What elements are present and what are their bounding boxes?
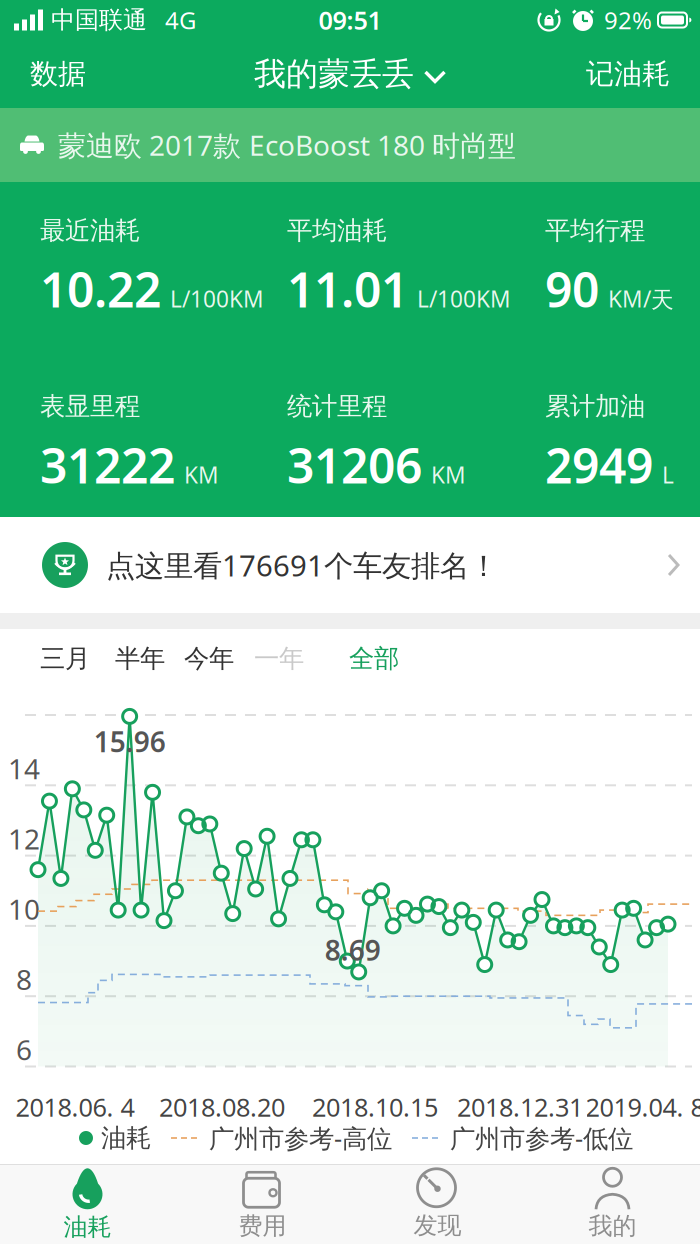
staticText: 4G <box>165 4 196 36</box>
staticText: KM <box>184 460 219 490</box>
staticText: 平均行程 <box>545 215 645 246</box>
button[interactable]: 半年 <box>115 643 165 674</box>
staticText: 15.96 <box>94 723 166 760</box>
button[interactable]: 费用 <box>175 1165 350 1244</box>
button[interactable]: 发现 <box>350 1165 525 1244</box>
staticText: 14 <box>8 750 40 787</box>
staticText: 2019.04. 8 <box>585 1090 700 1124</box>
staticText: 8 <box>16 961 32 998</box>
staticText: 12 <box>8 820 40 857</box>
staticText: 2018.08.20 <box>159 1090 285 1124</box>
staticText: 费用 <box>238 1211 286 1241</box>
staticText: 一年 <box>254 643 304 674</box>
staticText: 油耗 <box>63 1212 111 1242</box>
staticText: 31222 <box>40 433 175 497</box>
staticText: 今年 <box>184 643 234 674</box>
staticText: 90 <box>545 257 599 321</box>
staticText: 蒙迪欧 2017款 EcoBoost 180 时尚型 <box>58 126 516 164</box>
button[interactable]: 记油耗 <box>586 57 700 91</box>
staticText: 我的蒙丢丢 <box>254 54 414 94</box>
staticText: 三月 <box>40 643 90 674</box>
staticText: 2018.12.31 <box>457 1090 583 1124</box>
staticText: 6 <box>16 1031 32 1068</box>
button[interactable]: 油耗 <box>0 1165 175 1244</box>
staticText: 平均油耗 <box>287 215 387 246</box>
button[interactable]: 我的蒙丢丢 <box>254 54 446 94</box>
button[interactable]: 今年 <box>184 643 234 674</box>
staticText: 8.69 <box>325 931 381 969</box>
staticText: 31206 <box>287 433 422 497</box>
button[interactable]: 蒙迪欧 2017款 EcoBoost 180 时尚型 <box>0 108 700 182</box>
staticText: 表显里程 <box>40 391 140 422</box>
staticText: 10 <box>8 890 40 927</box>
staticText: KM <box>431 460 466 490</box>
staticText: 中国联通 <box>51 5 147 35</box>
staticText: 92% <box>604 4 652 36</box>
button[interactable]: 全部 <box>349 643 399 674</box>
button[interactable]: 我的 <box>525 1165 700 1244</box>
staticText: 记油耗 <box>586 57 670 91</box>
staticText: 2018.10.15 <box>312 1090 438 1124</box>
staticText: 点这里看176691个车友排名！ <box>106 545 498 584</box>
staticText: 我的 <box>588 1211 636 1241</box>
staticText: 09:51 <box>318 3 381 37</box>
staticText: 数据 <box>30 57 86 91</box>
staticText: 2949 <box>545 433 653 497</box>
staticText: 11.01 <box>287 257 408 321</box>
staticText: 2018.06. 4 <box>15 1090 134 1124</box>
button[interactable]: 三月 <box>40 643 90 674</box>
button[interactable]: 数据 <box>0 57 86 91</box>
button[interactable]: 点这里看176691个车友排名！ <box>0 517 700 613</box>
staticText: 最近油耗 <box>40 215 140 246</box>
staticText: 统计里程 <box>287 391 387 422</box>
staticText: 发现 <box>413 1211 461 1240</box>
staticText: 广州市参考-低位 <box>450 1121 633 1155</box>
staticText: L/100KM <box>417 284 511 314</box>
staticText: 全部 <box>349 643 399 674</box>
staticText: 广州市参考-高位 <box>209 1121 392 1155</box>
staticText: 10.22 <box>40 257 161 321</box>
staticText: L/100KM <box>170 284 264 314</box>
staticText: KM/天 <box>608 284 674 314</box>
button[interactable]: 一年 <box>254 643 304 674</box>
staticText: L <box>662 460 674 490</box>
staticText: 半年 <box>115 643 165 674</box>
staticText: 累计加油 <box>545 391 645 422</box>
staticText: 油耗 <box>101 1122 151 1153</box>
